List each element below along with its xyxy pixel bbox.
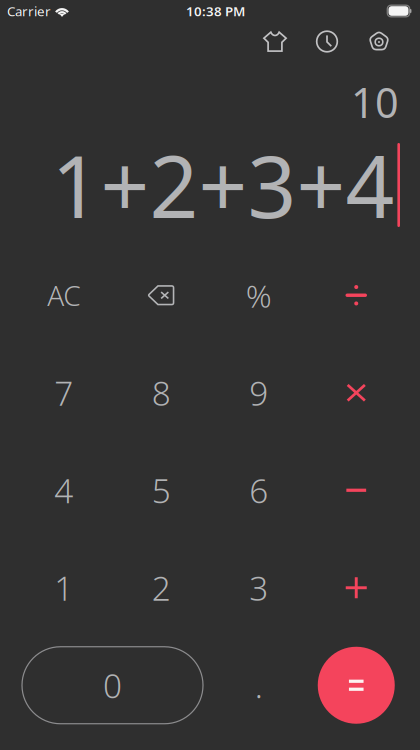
button[interactable]: Multiply bbox=[307, 344, 405, 441]
staticText: % bbox=[246, 274, 272, 316]
button[interactable]: 5 bbox=[112, 441, 210, 539]
staticText: 2 bbox=[152, 566, 171, 610]
button[interactable]: Equals bbox=[307, 636, 405, 734]
staticText: 7 bbox=[54, 371, 73, 415]
button[interactable]: History bbox=[301, 22, 353, 60]
button[interactable]: 1 bbox=[15, 539, 112, 636]
button[interactable]: AC bbox=[15, 246, 112, 344]
button[interactable]: 9 bbox=[210, 344, 307, 441]
button[interactable]: 6 bbox=[210, 441, 307, 539]
button[interactable]: 0 bbox=[15, 636, 210, 734]
button[interactable]: 2 bbox=[112, 539, 210, 636]
staticText: 1+2+3+4 bbox=[51, 128, 394, 242]
button[interactable]: Delete bbox=[112, 246, 210, 344]
button[interactable]: 8 bbox=[112, 344, 210, 441]
staticText: AC bbox=[47, 277, 80, 314]
button[interactable]: Subtract bbox=[307, 441, 405, 539]
button[interactable]: Settings bbox=[353, 22, 405, 60]
staticText: 6 bbox=[249, 468, 268, 512]
button[interactable]: % bbox=[210, 246, 307, 344]
button[interactable]: 7 bbox=[15, 344, 112, 441]
button[interactable]: Add bbox=[307, 539, 405, 636]
button[interactable]: . bbox=[210, 636, 307, 734]
button[interactable]: Divide bbox=[307, 246, 405, 344]
staticText: 4 bbox=[54, 468, 73, 512]
button[interactable]: 4 bbox=[15, 441, 112, 539]
staticText: Carrier bbox=[7, 2, 51, 20]
staticText: 8 bbox=[152, 371, 171, 415]
staticText: 0 bbox=[103, 663, 122, 707]
staticText: 1 bbox=[54, 566, 73, 610]
button[interactable]: 3 bbox=[210, 539, 307, 636]
staticText: 10:38 PM bbox=[186, 2, 245, 20]
staticText: 9 bbox=[249, 371, 268, 415]
staticText: . bbox=[255, 663, 263, 707]
staticText: 5 bbox=[152, 468, 171, 512]
staticText: 3 bbox=[249, 566, 268, 610]
staticText: 10 bbox=[351, 75, 399, 129]
button[interactable]: Themes bbox=[249, 22, 301, 60]
